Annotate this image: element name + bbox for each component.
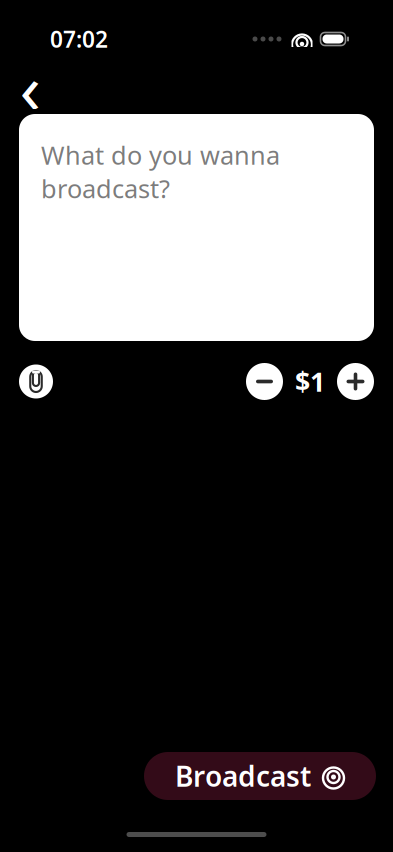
button[interactable]: Back (8, 65, 52, 109)
button[interactable]: What do you wanna broadcast? (19, 114, 374, 341)
button[interactable]: Increase amount (337, 363, 374, 400)
staticText: $1 (295, 364, 325, 399)
button[interactable]: Attach file (19, 364, 53, 398)
staticText: What do you wanna broadcast? (41, 138, 280, 205)
staticText: ‹ (19, 41, 40, 133)
staticText: Broadcast (175, 757, 311, 795)
button[interactable]: Decrease amount (246, 363, 283, 400)
staticText: 07:02 (50, 24, 108, 54)
button[interactable]: Broadcast (144, 752, 376, 800)
